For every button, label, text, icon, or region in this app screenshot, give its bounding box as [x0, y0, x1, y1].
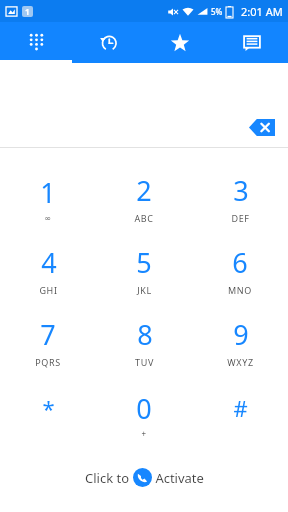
button[interactable]: 0 [96, 378, 192, 450]
staticText: 5% [211, 6, 223, 17]
staticText: 1 [40, 174, 56, 211]
button[interactable]: 5 [96, 234, 192, 306]
staticText: 0 [136, 390, 152, 427]
button[interactable]: 2 [96, 162, 192, 234]
staticText: ABC [134, 212, 154, 224]
staticText: 2 [136, 172, 152, 209]
staticText: MNO [228, 284, 252, 296]
staticText: PQRS [35, 356, 61, 368]
staticText: 9 [233, 316, 249, 353]
staticText: GHI [39, 284, 58, 296]
button[interactable]: # [192, 378, 288, 450]
staticText: DEF [231, 212, 250, 224]
staticText: 6 [232, 244, 248, 281]
staticText: + [141, 428, 147, 439]
staticText: Click to [85, 469, 133, 487]
staticText: TUV [135, 356, 154, 368]
button[interactable]: 6 [192, 234, 288, 306]
staticText: Activate [152, 469, 204, 487]
staticText: 3 [233, 172, 249, 209]
button[interactable]: 4 [0, 234, 96, 306]
staticText: 1 [25, 6, 30, 17]
staticText: 4 [41, 244, 57, 281]
staticText: 2:01 AM [241, 4, 283, 19]
staticText: ∞ [44, 214, 52, 223]
button[interactable]: 8 [96, 306, 192, 378]
staticText: 8 [137, 316, 153, 353]
button[interactable]: Backspace [244, 114, 280, 140]
button[interactable]: 1 [0, 162, 96, 234]
button[interactable]: 7 [0, 306, 96, 378]
staticText: 5 [136, 244, 152, 281]
button[interactable]: Favorites [144, 22, 216, 63]
button[interactable]: Call history [72, 22, 144, 63]
button[interactable]: 3 [192, 162, 288, 234]
staticText: WXYZ [227, 356, 254, 368]
staticText: # [233, 393, 248, 423]
button[interactable]: Dialpad [0, 22, 72, 63]
button[interactable]: Click to [85, 468, 204, 487]
staticText: * [42, 393, 55, 423]
button[interactable]: * [0, 378, 96, 450]
staticText: 7 [40, 316, 56, 353]
button[interactable]: Messages [216, 22, 288, 63]
staticText: JKL [137, 284, 152, 296]
button[interactable]: 9 [192, 306, 288, 378]
